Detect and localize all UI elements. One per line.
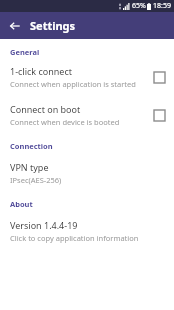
staticText: General bbox=[10, 47, 40, 57]
button[interactable]: Back bbox=[3, 14, 26, 37]
staticText: Connect when device is booted bbox=[10, 117, 120, 127]
staticText: VPN type bbox=[10, 161, 49, 173]
staticText: Version 1.4.4-19 bbox=[10, 219, 78, 231]
staticText: Connection bbox=[10, 141, 53, 151]
staticText: Settings bbox=[30, 18, 76, 33]
staticText: 65% bbox=[132, 1, 146, 11]
staticText: Connect when application is started bbox=[10, 79, 136, 89]
staticText: Click to copy application information bbox=[10, 233, 139, 243]
button[interactable]: VPN type bbox=[0, 161, 174, 185]
button[interactable]: 1-click connect bbox=[0, 65, 174, 89]
staticText: IPsec(AES-256) bbox=[10, 175, 62, 185]
staticText: Connect on boot bbox=[10, 103, 81, 115]
staticText: 18:59 bbox=[153, 1, 171, 11]
staticText: 1-click connect bbox=[10, 65, 73, 77]
button[interactable]: Version 1.4.4-19 bbox=[0, 219, 174, 243]
button[interactable]: Connect on boot bbox=[0, 103, 174, 127]
staticText: About bbox=[10, 199, 33, 209]
